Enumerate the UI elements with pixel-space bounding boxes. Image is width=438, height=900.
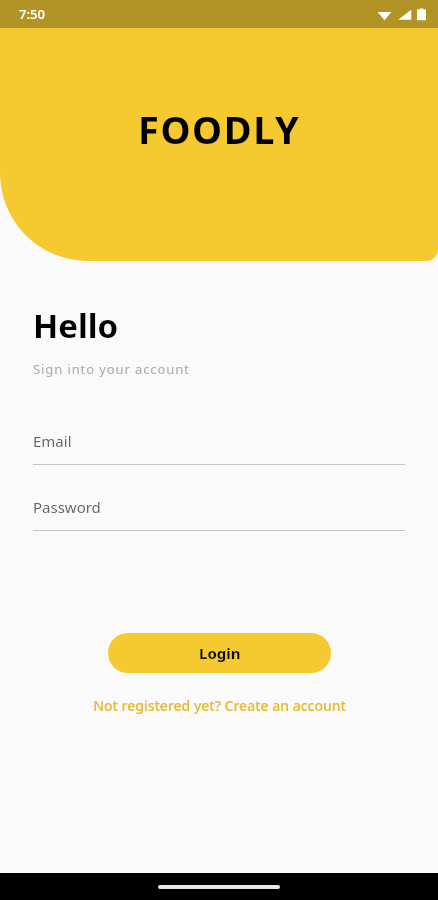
button[interactable]: Login — [108, 633, 331, 673]
staticText: Email — [33, 431, 72, 451]
button[interactable]: Password — [33, 497, 405, 531]
staticText: FOODLY — [138, 103, 301, 155]
staticText: Not registered yet? Create an account — [93, 696, 346, 715]
button[interactable]: Email — [33, 431, 405, 465]
staticText: Password — [33, 497, 101, 517]
staticText: Sign into your account — [33, 360, 190, 378]
staticText: Hello — [33, 303, 119, 348]
staticText: 7:50 — [19, 5, 45, 23]
staticText: Login — [199, 643, 241, 663]
button[interactable]: Not registered yet? Create an account — [24, 696, 414, 715]
